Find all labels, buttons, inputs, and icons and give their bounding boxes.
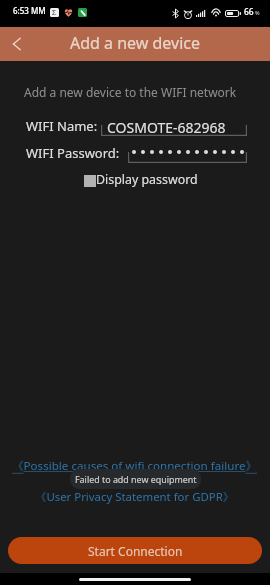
staticText: Start Connection xyxy=(88,543,183,559)
staticText: COSMOTE-682968 xyxy=(107,118,226,137)
button[interactable]: Back xyxy=(0,27,34,61)
staticText: % xyxy=(255,9,260,16)
staticText: Add a new device xyxy=(70,32,201,54)
staticText: WIFI Name: xyxy=(26,117,98,135)
staticText: Add a new device to the WIFI network xyxy=(24,84,237,100)
staticText: 《Possible causes of wifi connection fail… xyxy=(12,458,258,474)
staticText: WIFI Password: xyxy=(26,144,120,162)
staticText: Display password xyxy=(96,171,198,188)
staticText: 6:53 MM xyxy=(13,5,46,16)
staticText: 66 xyxy=(244,6,254,18)
staticText: 《User Privacy Statement for GDPR》 xyxy=(35,489,235,505)
button[interactable]: 《User Privacy Statement for GDPR》 xyxy=(0,488,270,506)
button[interactable]: Display password xyxy=(84,171,198,188)
staticText: Σ xyxy=(52,8,57,17)
button[interactable]: 《Possible causes of wifi connection fail… xyxy=(0,457,270,475)
button[interactable]: Start Connection xyxy=(8,537,262,564)
staticText: Failed to add new equipment xyxy=(75,473,197,485)
